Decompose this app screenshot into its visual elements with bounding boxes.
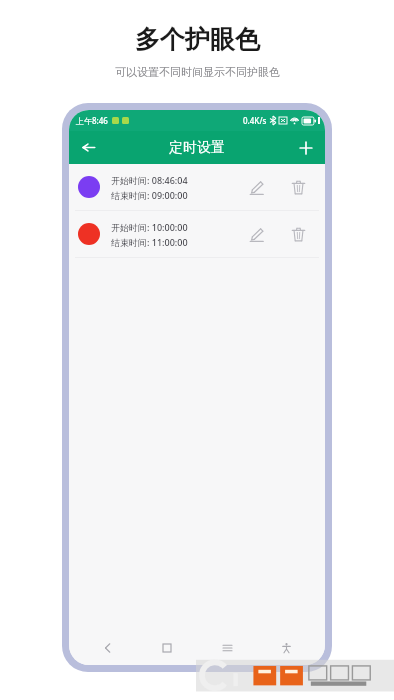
button[interactable]: Recent apps [207,633,247,663]
button[interactable]: Delete [282,218,314,250]
staticText: 多个护眼色 [135,24,260,55]
staticText: 开始时间: 08:46:04 [111,174,188,186]
button[interactable]: Accessibility [266,633,306,663]
staticText: 0.4K/s [243,115,267,126]
staticText: 结束时间: 09:00:00 [111,189,188,201]
button[interactable]: Add [287,131,325,164]
staticText: 定时设置 [169,139,225,157]
staticText: 结束时间: 11:00:00 [111,236,188,248]
staticText: 开始时间: 10:00:00 [111,221,188,233]
button[interactable]: Edit [240,218,272,250]
button[interactable]: Edit [240,171,272,203]
button[interactable]: Back [88,633,128,663]
button[interactable]: Back [69,131,107,164]
staticText: 上午8:46 [76,115,108,126]
button[interactable]: 开始时间: 08:46:04 [69,164,325,210]
button[interactable]: 开始时间: 10:00:00 [69,211,325,257]
button[interactable]: Home [147,633,187,663]
button[interactable]: Delete [282,171,314,203]
staticText: 可以设置不同时间显示不同护眼色 [115,65,280,79]
